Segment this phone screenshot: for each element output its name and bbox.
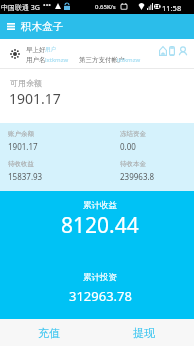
- staticText: 11:58: [162, 3, 182, 13]
- staticText: 积木盒子: [21, 20, 63, 33]
- staticText: 待收收益: [8, 160, 34, 168]
- button[interactable]: 充值: [0, 319, 97, 346]
- staticText: •••: [43, 1, 51, 11]
- staticText: 早上好: [26, 46, 46, 54]
- staticText: 中国联通 3G: [1, 3, 40, 13]
- staticText: 第三方支付帐户: [79, 56, 125, 64]
- staticText: 冻结资金: [120, 130, 146, 138]
- staticText: 1901.17: [9, 89, 61, 108]
- button[interactable]: Profile: [176, 44, 189, 58]
- staticText: 1901.17: [8, 141, 38, 152]
- button[interactable]: Home: [156, 44, 169, 58]
- staticText: 用户名: [26, 56, 46, 64]
- button[interactable]: Mobile: [167, 44, 177, 58]
- staticText: 用户: [45, 46, 56, 53]
- staticText: 提现: [133, 326, 155, 340]
- staticText: 0.00: [120, 141, 136, 152]
- staticText: 充值: [38, 326, 60, 340]
- button[interactable]: 提现: [97, 319, 194, 346]
- staticText: 8120.44: [61, 211, 139, 240]
- staticText: lxtkmzw: [45, 56, 69, 64]
- staticText: 0.65K/s: [95, 3, 116, 11]
- staticText: 待收本金: [120, 160, 146, 168]
- staticText: 239963.8: [120, 171, 155, 182]
- staticText: 15837.93: [8, 171, 43, 182]
- button[interactable]: Menu: [2, 18, 19, 35]
- staticText: 累计投资: [83, 272, 117, 283]
- staticText: 账户余额: [8, 130, 34, 138]
- staticText: 累计收益: [83, 200, 117, 211]
- staticText: 312963.78: [69, 287, 132, 305]
- staticText: lxtkmzw: [117, 56, 141, 64]
- staticText: 可用余额: [10, 78, 42, 88]
